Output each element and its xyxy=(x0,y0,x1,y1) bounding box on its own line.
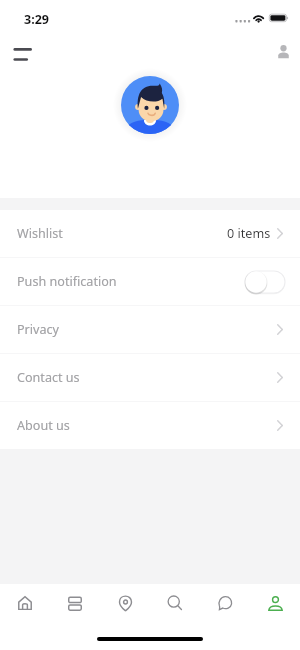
button[interactable]: Profile xyxy=(266,37,300,69)
button[interactable]: Orders xyxy=(50,584,100,622)
button[interactable]: Contact us xyxy=(0,354,300,401)
staticText: 3:29 xyxy=(24,11,49,28)
staticText: Contact us xyxy=(17,369,80,386)
button[interactable]: Messages xyxy=(200,584,250,622)
button[interactable]: Avatar xyxy=(121,76,179,134)
button[interactable]: Wishlist xyxy=(0,210,300,257)
button[interactable]: About us xyxy=(0,402,300,449)
staticText: About us xyxy=(17,417,70,434)
staticText: Privacy xyxy=(17,321,60,338)
button[interactable]: Push notification toggle xyxy=(245,270,286,294)
button[interactable]: Push notification xyxy=(0,258,300,305)
button[interactable]: Privacy xyxy=(0,306,300,353)
staticText: Wishlist xyxy=(17,225,63,242)
button[interactable]: Home xyxy=(0,584,50,622)
button[interactable]: Profile xyxy=(250,584,300,622)
button[interactable]: Search xyxy=(150,584,200,622)
button[interactable]: Menu xyxy=(2,37,40,73)
staticText: 0 items xyxy=(227,225,271,242)
staticText: Push notification xyxy=(17,273,117,290)
button[interactable]: Locations xyxy=(100,584,150,622)
